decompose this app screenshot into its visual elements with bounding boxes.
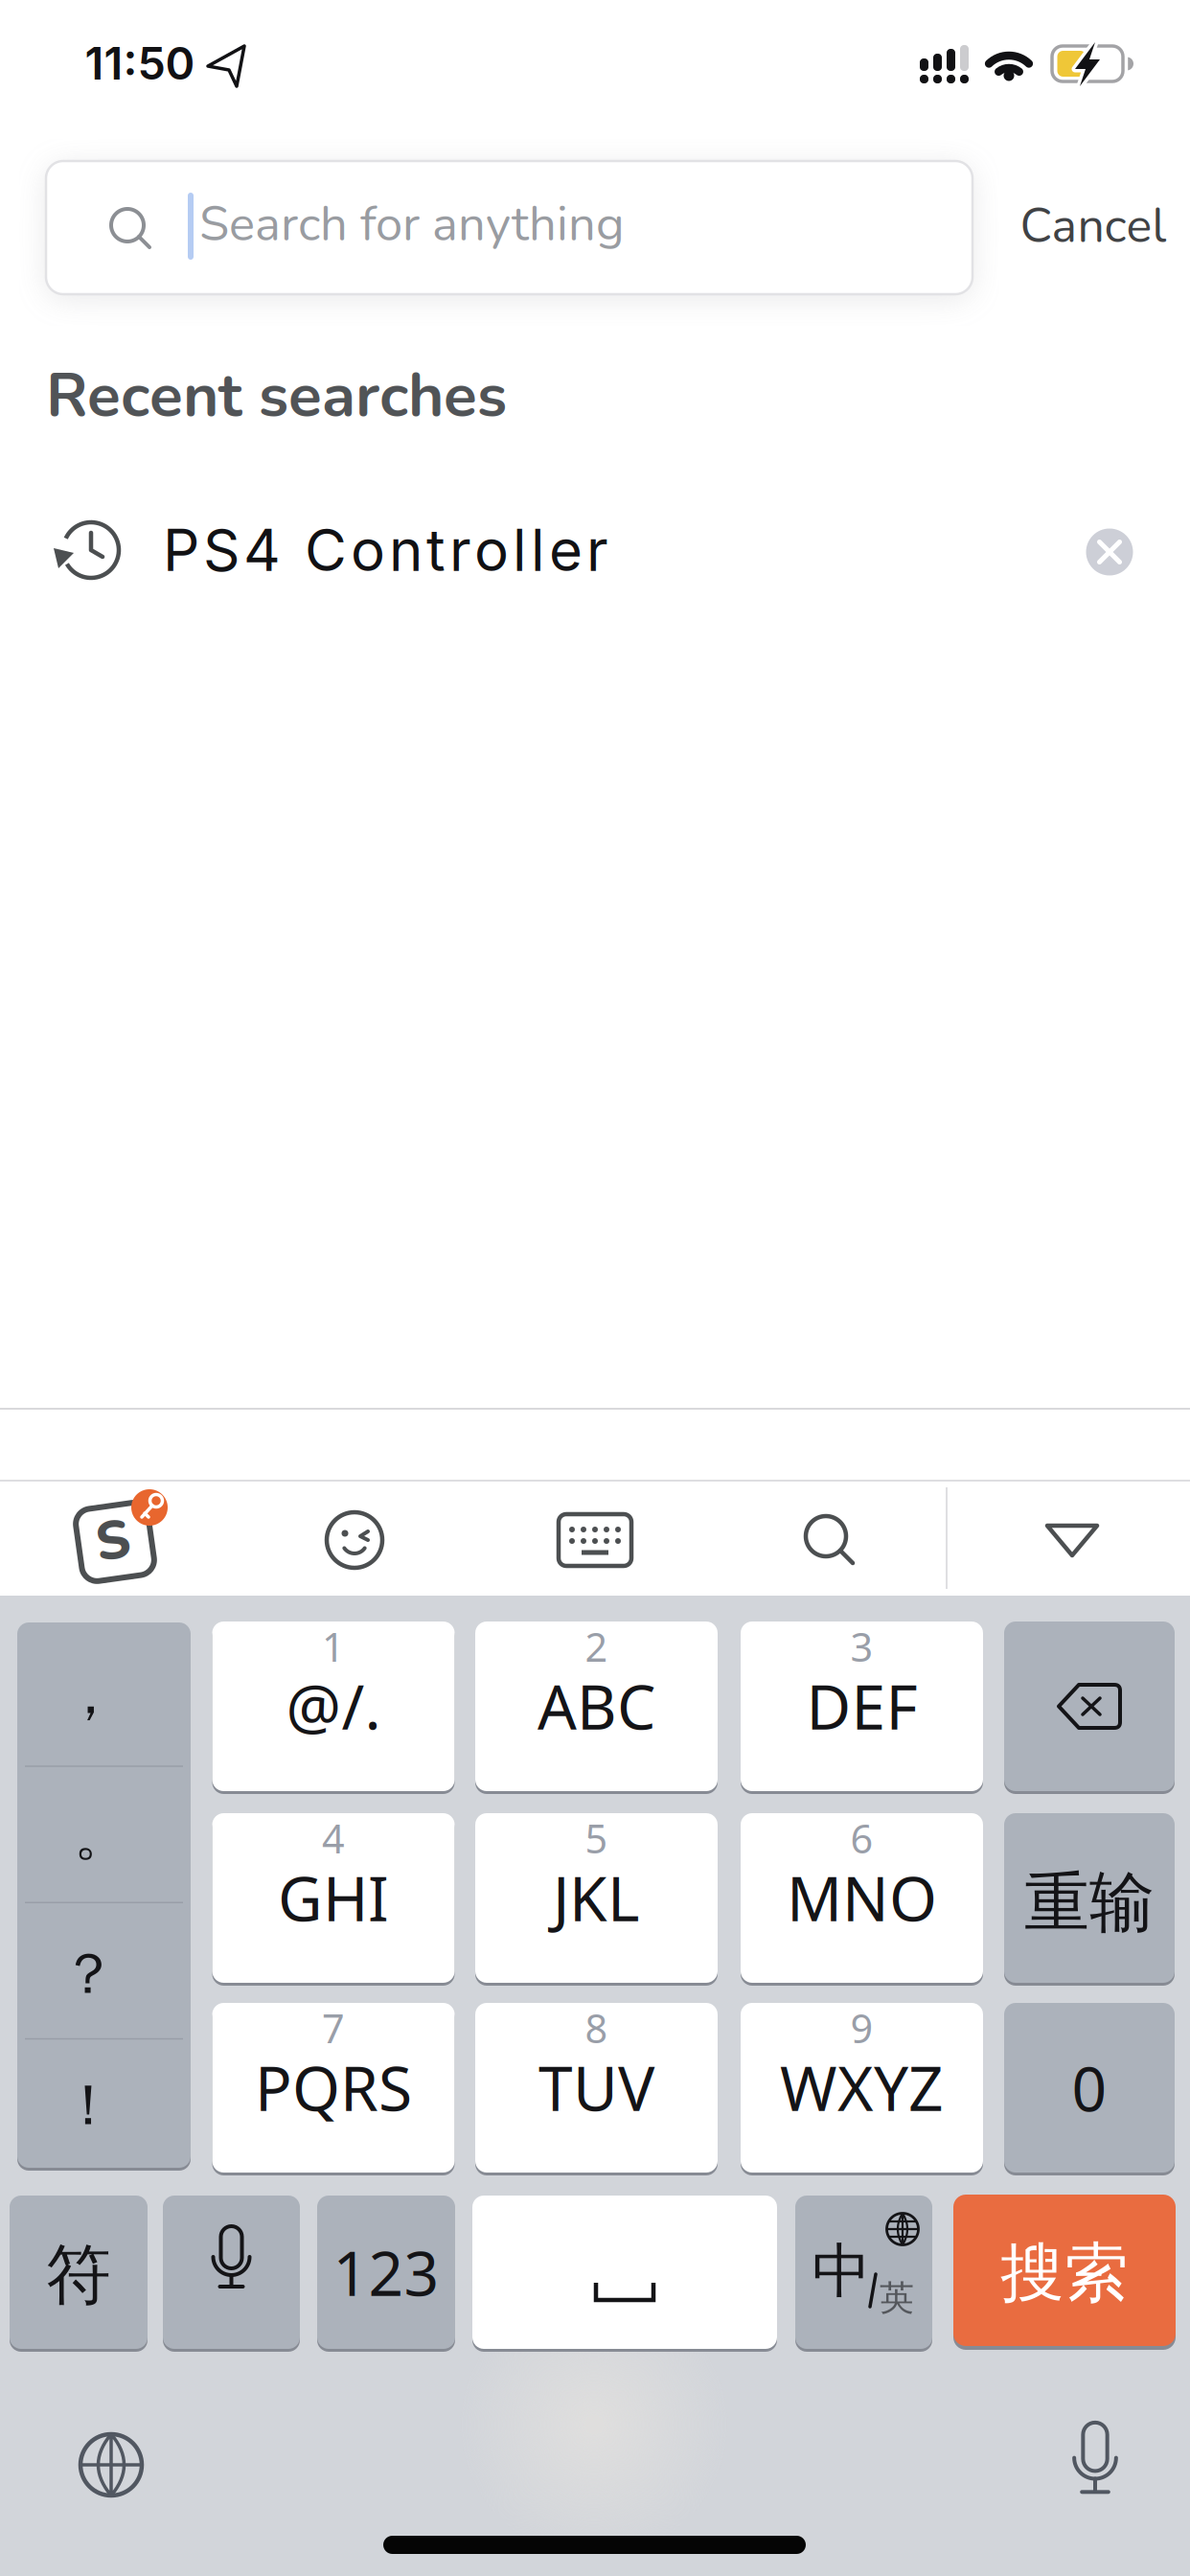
button[interactable]: Hide keyboard — [1024, 1492, 1120, 1588]
button[interactable]: Emoji — [307, 1492, 402, 1588]
button[interactable]: ！ — [17, 2037, 191, 2173]
staticText: 5 — [585, 1812, 608, 1864]
staticText: 。 — [74, 1801, 130, 1870]
staticText: 重输 — [1024, 1863, 1155, 1943]
staticText: 6 — [850, 1812, 873, 1864]
staticText: Recent searches — [46, 354, 507, 438]
staticText: ！ — [60, 2071, 117, 2140]
button[interactable]: 1 — [212, 1621, 455, 1791]
staticText: PS4 Controller — [163, 515, 608, 585]
staticText: 7 — [322, 2002, 345, 2054]
staticText: 英 — [880, 2277, 914, 2319]
button[interactable]: 0 — [1004, 2003, 1175, 2173]
staticText: Cancel — [1020, 193, 1167, 259]
button[interactable]: Space — [472, 2196, 777, 2349]
button[interactable]: Sogou — [57, 1481, 176, 1596]
staticText: 0 — [1072, 2047, 1107, 2128]
button[interactable]: 7 — [212, 2003, 455, 2173]
staticText: MNO — [787, 1857, 937, 1938]
button[interactable]: 123 — [317, 2196, 455, 2349]
staticText: 3 — [850, 1620, 873, 1673]
button[interactable]: 。 — [17, 1767, 191, 1903]
button[interactable]: Keyboard — [547, 1492, 643, 1588]
button[interactable]: ？ — [17, 1906, 191, 2042]
staticText: 8 — [585, 2002, 608, 2054]
button[interactable]: 3 — [741, 1621, 983, 1791]
button[interactable]: Voice input — [163, 2196, 300, 2349]
button[interactable]: Search for anything — [46, 161, 973, 294]
staticText: WXYZ — [780, 2047, 944, 2128]
staticText: 11:50 — [85, 36, 195, 90]
staticText: GHI — [278, 1857, 389, 1938]
button[interactable]: ， — [17, 1626, 191, 1762]
button[interactable]: 6 — [741, 1813, 983, 1983]
button[interactable]: Chinese English — [795, 2196, 932, 2349]
button[interactable]: 8 — [475, 2003, 718, 2173]
staticText: PQRS — [255, 2047, 412, 2128]
staticText: JKL — [553, 1857, 640, 1938]
button[interactable]: Next keyboard — [58, 2412, 164, 2518]
button[interactable]: Delete — [1004, 1621, 1175, 1791]
staticText: 搜索 — [1000, 2234, 1129, 2312]
button[interactable]: 4 — [212, 1813, 455, 1983]
button[interactable]: 5 — [475, 1813, 718, 1983]
staticText: S — [96, 1504, 130, 1578]
staticText: 123 — [333, 2231, 439, 2313]
staticText: ？ — [60, 1940, 117, 2009]
button[interactable]: Remove recent search — [1086, 529, 1133, 575]
button[interactable]: 9 — [741, 2003, 983, 2173]
staticText: @/. — [286, 1665, 381, 1747]
button[interactable]: PS4 Controller — [0, 496, 1035, 604]
button[interactable]: 2 — [475, 1621, 718, 1791]
staticText: 4 — [322, 1812, 345, 1864]
button[interactable]: Search — [953, 2195, 1176, 2346]
staticText: Search for anything — [199, 191, 625, 257]
staticText: 9 — [850, 2002, 873, 2054]
button[interactable]: 符 — [10, 2196, 148, 2349]
button[interactable]: Dictation — [1042, 2410, 1148, 2516]
staticText: 符 — [46, 2235, 111, 2315]
staticText: ， — [62, 1660, 119, 1729]
staticText: 中 — [812, 2235, 870, 2307]
staticText: DEF — [806, 1665, 917, 1747]
staticText: 1 — [322, 1620, 345, 1673]
button[interactable]: 重输 — [1004, 1813, 1175, 1983]
staticText: ABC — [538, 1665, 655, 1747]
staticText: TUV — [538, 2047, 654, 2128]
button[interactable]: Cancel — [1020, 193, 1167, 259]
staticText: 2 — [585, 1620, 608, 1673]
button[interactable]: Search — [782, 1492, 878, 1588]
